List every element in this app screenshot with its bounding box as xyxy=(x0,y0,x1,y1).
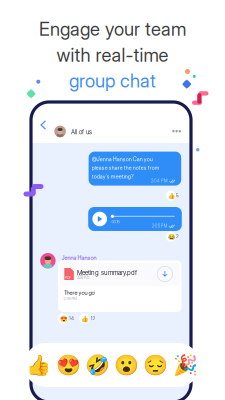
staticText: 👍 xyxy=(26,353,51,377)
staticText: with real-time xyxy=(56,44,168,66)
button[interactable]: Download file xyxy=(157,266,173,282)
staticText: 5 xyxy=(176,193,179,198)
button[interactable]: Laughing xyxy=(83,343,112,387)
button[interactable]: Thumbs up xyxy=(24,343,53,387)
staticText: 😍 xyxy=(55,353,80,377)
button[interactable]: More options xyxy=(166,122,186,140)
staticText: 2:06 PM xyxy=(63,296,76,301)
staticText: 00:15 xyxy=(111,219,119,224)
staticText: 😔 xyxy=(143,353,168,377)
staticText: 2:04 PM xyxy=(151,178,168,183)
staticText: @Jenna Hanson Can you xyxy=(92,156,153,162)
staticText: 2 xyxy=(176,234,179,239)
staticText: 2:05 PM xyxy=(152,223,168,228)
staticText: group chat xyxy=(69,70,156,92)
staticText: please share the notes from xyxy=(92,165,159,171)
button[interactable]: Back xyxy=(34,116,50,134)
staticText: 👍 xyxy=(168,192,175,199)
staticText: 🤣 xyxy=(85,353,110,377)
staticText: 12 xyxy=(90,316,95,321)
staticText: Meeting summary.pdf xyxy=(77,269,137,276)
staticText: 😮 xyxy=(114,353,139,377)
staticText: today's meeting? xyxy=(92,173,134,180)
staticText: 🎉 xyxy=(173,353,198,377)
button[interactable]: Heart eyes xyxy=(53,343,83,387)
staticText: Engage your team xyxy=(39,18,186,40)
staticText: Jenna Hanson xyxy=(61,254,96,261)
button[interactable]: Surprised xyxy=(112,343,141,387)
staticText: There you go! xyxy=(63,289,95,296)
staticText: 😍 xyxy=(60,315,68,322)
staticText: 👍 xyxy=(81,315,89,322)
button[interactable]: Sad xyxy=(141,343,171,387)
staticText: 328 Kb xyxy=(77,275,89,280)
staticText: 14 xyxy=(69,316,74,321)
staticText: All of us xyxy=(71,128,92,136)
staticText: PDF xyxy=(65,276,71,280)
button[interactable]: Party xyxy=(171,343,200,387)
staticText: 😂 xyxy=(168,233,175,240)
